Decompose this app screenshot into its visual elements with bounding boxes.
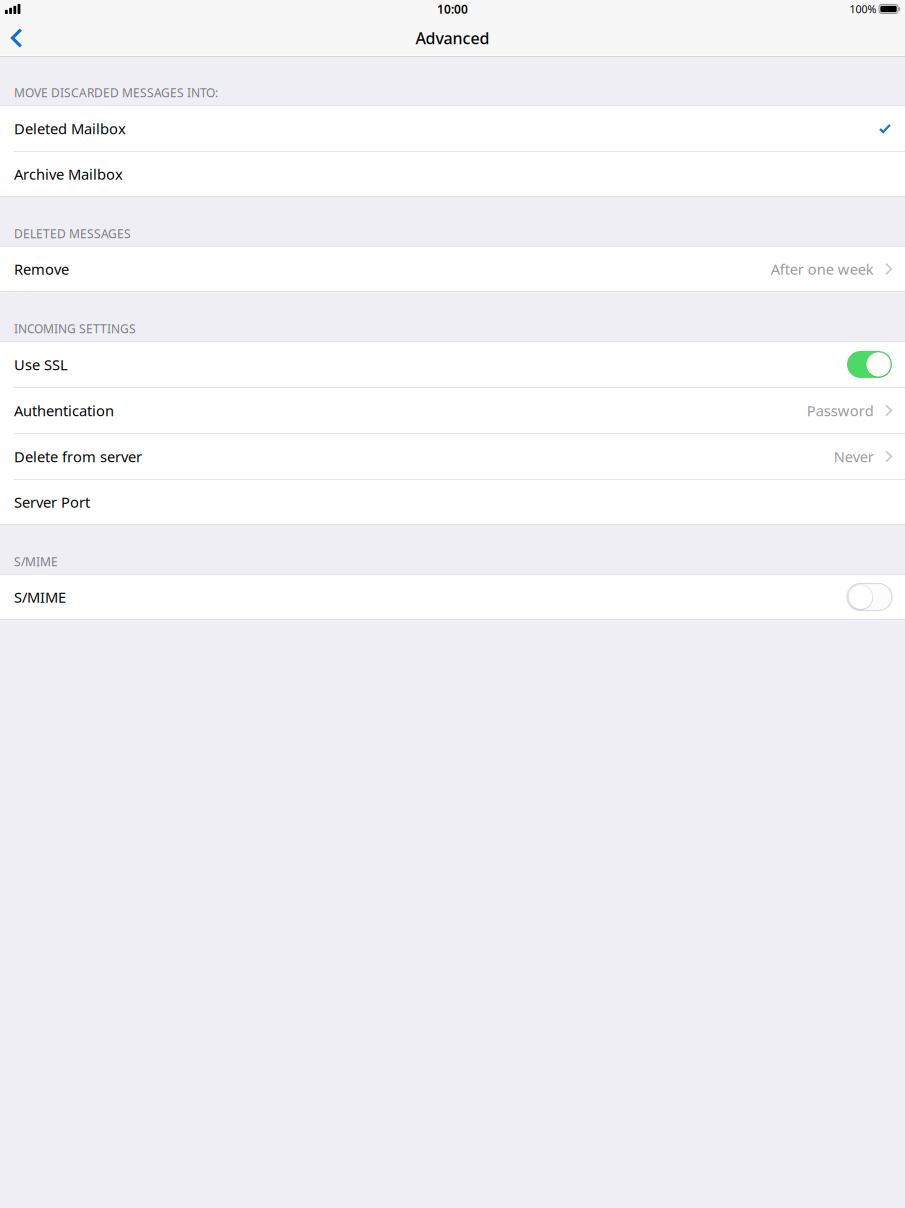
staticText: Advanced bbox=[415, 27, 489, 49]
staticText: Use SSL bbox=[14, 355, 68, 374]
button[interactable]: Remove bbox=[0, 247, 905, 291]
staticText: Password bbox=[807, 401, 874, 420]
staticText: S/MIME bbox=[14, 554, 58, 569]
button[interactable]: Delete from server bbox=[0, 434, 905, 479]
staticText: Delete from server bbox=[14, 447, 142, 466]
staticText: INCOMING SETTINGS bbox=[14, 321, 136, 336]
button[interactable]: Use SSL bbox=[847, 351, 892, 378]
staticText: DELETED MESSAGES bbox=[14, 226, 131, 241]
button[interactable]: Back bbox=[0, 20, 48, 56]
button[interactable]: S/MIME bbox=[847, 583, 892, 610]
staticText: Archive Mailbox bbox=[14, 164, 123, 184]
staticText: 10:00 bbox=[437, 1, 468, 17]
staticText: MOVE DISCARDED MESSAGES INTO: bbox=[14, 85, 218, 100]
staticText: After one week bbox=[771, 259, 874, 279]
staticText: S/MIME bbox=[14, 587, 66, 607]
staticText: Never bbox=[834, 447, 874, 466]
staticText: Server Port bbox=[14, 492, 90, 512]
button[interactable]: Deleted Mailbox bbox=[0, 106, 905, 151]
staticText: Authentication bbox=[14, 401, 114, 420]
staticText: 100% bbox=[850, 2, 877, 16]
button[interactable]: Archive Mailbox bbox=[0, 152, 905, 196]
staticText: Deleted Mailbox bbox=[14, 119, 126, 138]
staticText: Remove bbox=[14, 259, 69, 279]
button[interactable]: Authentication bbox=[0, 388, 905, 433]
button[interactable]: Server Port bbox=[0, 480, 905, 524]
